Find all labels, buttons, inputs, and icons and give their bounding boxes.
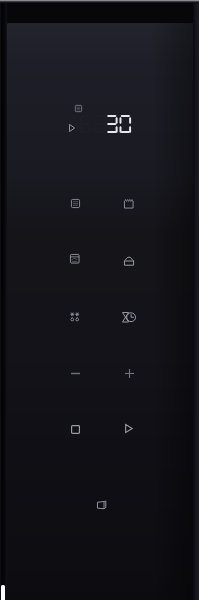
button[interactable]: Grill (116, 191, 142, 217)
button[interactable]: Increase (116, 360, 142, 386)
button[interactable]: Open door (88, 492, 114, 518)
button[interactable]: Start (116, 415, 142, 441)
button[interactable]: Menu (62, 190, 88, 216)
button[interactable]: Program (68, 98, 89, 119)
button[interactable]: Steam (116, 248, 142, 274)
button[interactable]: Oven (62, 246, 88, 272)
button[interactable]: Decrease (62, 360, 88, 386)
button[interactable]: Timer (116, 304, 142, 330)
button[interactable]: Stop (62, 416, 88, 442)
button[interactable]: Defrost (62, 304, 88, 330)
